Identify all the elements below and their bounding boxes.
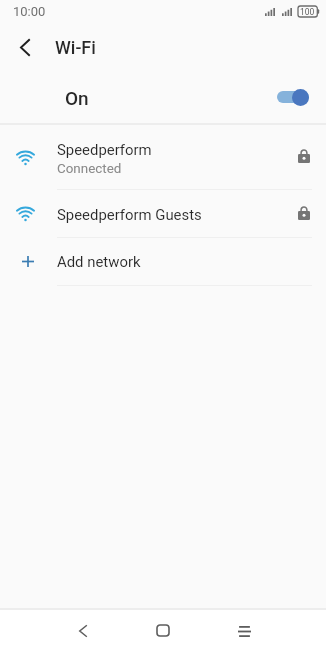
button[interactable]: Recents bbox=[204, 610, 285, 652]
staticText: On bbox=[65, 87, 89, 109]
button[interactable]: Speedperform bbox=[0, 125, 326, 189]
button[interactable]: Back bbox=[41, 610, 123, 652]
staticText: Add network bbox=[57, 253, 141, 270]
staticText: 100 bbox=[300, 7, 315, 17]
staticText: Wi-Fi bbox=[55, 37, 96, 58]
button[interactable]: On bbox=[0, 70, 326, 123]
button[interactable]: Home bbox=[123, 610, 204, 652]
staticText: Speedperform Guests bbox=[57, 206, 202, 223]
staticText: Speedperform bbox=[57, 141, 152, 158]
staticText: Connected bbox=[57, 161, 122, 177]
button[interactable]: Back bbox=[0, 25, 44, 69]
button[interactable]: Add network bbox=[0, 238, 326, 285]
button[interactable]: Speedperform Guests bbox=[0, 190, 326, 237]
staticText: 10:00 bbox=[13, 4, 46, 19]
